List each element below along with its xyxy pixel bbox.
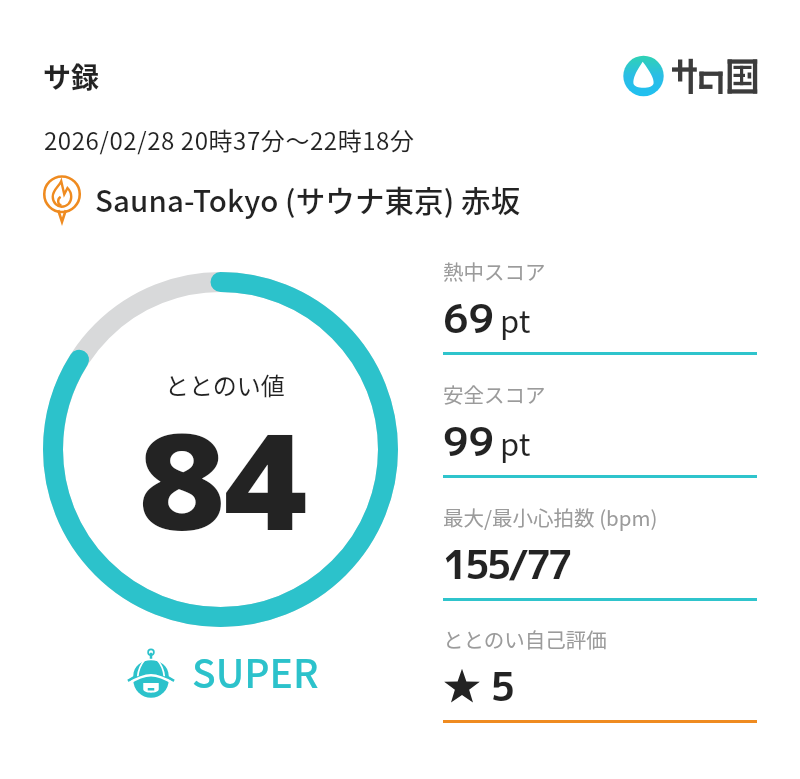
staticText: 安全スコア [443, 379, 546, 409]
button[interactable]: 安全スコア [443, 379, 757, 480]
staticText: 99 [443, 413, 495, 469]
staticText: 最大/最小心拍数 (bpm) [443, 502, 658, 532]
staticText: 熱中スコア [443, 256, 546, 286]
staticText: 84 [139, 390, 311, 571]
button[interactable]: 熱中スコア [443, 256, 757, 357]
staticText: ととのい自己評価 [443, 624, 607, 654]
staticText: pt [500, 420, 531, 465]
staticText: pt [500, 297, 531, 342]
staticText: Sauna-Tokyo (サウナ東京) 赤坂 [95, 178, 521, 221]
staticText: SUPER [192, 643, 319, 699]
button[interactable]: ととのい自己評価 [443, 624, 757, 725]
staticText: 5 [490, 658, 516, 714]
staticText: サ録 [43, 56, 100, 97]
button[interactable]: SUPER [126, 645, 319, 701]
staticText: 69 [443, 290, 495, 346]
button[interactable]: サの国 logo [624, 50, 772, 102]
button[interactable]: 最大/最小心拍数 (bpm) [443, 502, 757, 603]
button[interactable]: Sauna-Tokyo (サウナ東京) 赤坂 [37, 174, 521, 224]
staticText: 2026/02/28 20時37分〜22時18分 [44, 122, 415, 157]
staticText: 155/77 [443, 536, 569, 592]
staticText: ととのい値 [165, 367, 285, 402]
